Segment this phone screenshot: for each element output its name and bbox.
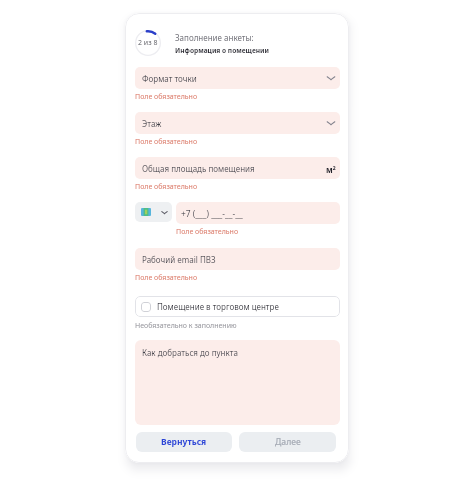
staticText: Далее [275, 436, 301, 448]
staticText: Поле обязательно [176, 227, 239, 237]
staticText: м² [326, 164, 336, 175]
staticText: +7 (___) ___-__-__ [181, 208, 243, 219]
staticText: Рабочий email ПВЗ [142, 254, 216, 265]
button[interactable]: Рабочий email ПВЗ [135, 248, 340, 270]
button[interactable]: Как добраться до пункта [135, 340, 340, 425]
staticText: Поле обязательно [135, 137, 198, 147]
staticText: Поле обязательно [135, 92, 198, 102]
staticText: Формат точки [142, 73, 197, 84]
button[interactable]: Формат точки [135, 67, 340, 89]
button[interactable]: Выбрать страну [135, 202, 172, 222]
staticText: 2 из 8 [138, 38, 158, 48]
staticText: Как добраться до пункта [142, 347, 238, 358]
button[interactable]: +7 (___) ___-__-__ [176, 202, 340, 224]
staticText: Помещение в торговом центре [157, 301, 279, 312]
staticText: Поле обязательно [135, 182, 198, 192]
button[interactable]: Общая площадь помещения [135, 157, 340, 179]
button[interactable]: Помещение в торговом центре [135, 296, 340, 317]
staticText: Заполнение анкеты: [175, 32, 254, 43]
button[interactable]: Вернуться [136, 432, 232, 452]
button[interactable]: Этаж [135, 112, 340, 134]
staticText: Информация о помещении [175, 46, 269, 55]
staticText: Этаж [142, 118, 162, 129]
staticText: Общая площадь помещения [142, 163, 255, 174]
staticText: Необязательно к заполнению [135, 321, 237, 331]
staticText: Вернуться [161, 436, 207, 448]
button[interactable]: Далее [239, 432, 336, 452]
staticText: Поле обязательно [135, 273, 198, 283]
